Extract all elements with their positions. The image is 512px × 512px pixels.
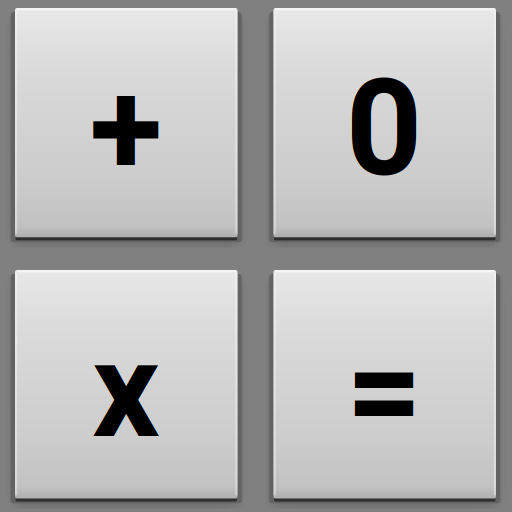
staticText: =	[346, 296, 422, 492]
button[interactable]: Equals	[273, 270, 496, 498]
staticText: x	[92, 296, 160, 492]
staticText: +	[88, 35, 164, 230]
button[interactable]: Zero	[273, 8, 496, 237]
staticText: 0	[346, 35, 423, 230]
button[interactable]: Multiply	[15, 270, 237, 498]
button[interactable]: Add	[15, 8, 237, 237]
